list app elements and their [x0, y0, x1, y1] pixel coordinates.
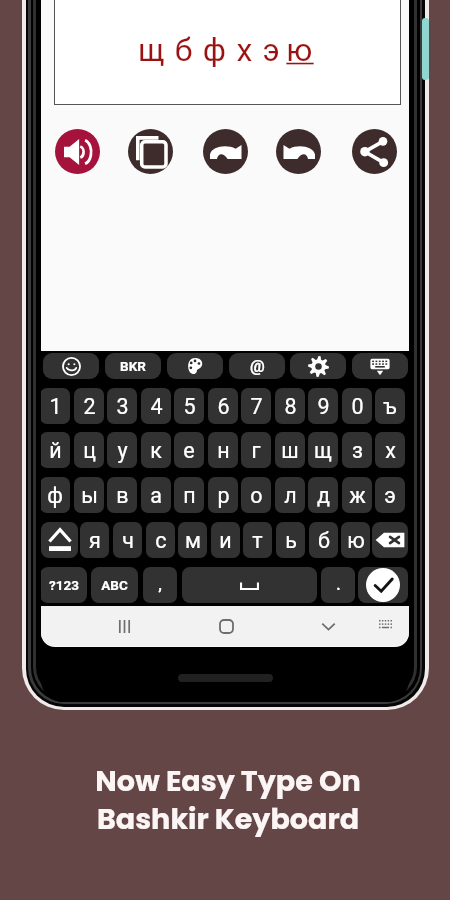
staticText: к [150, 438, 162, 463]
button[interactable]: Back [312, 610, 344, 642]
button[interactable]: ?123 [41, 567, 87, 603]
button[interactable]: Settings [290, 353, 346, 379]
button[interactable]: ж [342, 477, 372, 513]
button[interactable]: я [80, 522, 109, 558]
staticText: 9 [317, 394, 330, 419]
button[interactable]: 6 [208, 388, 238, 424]
button[interactable]: Redo [203, 129, 248, 174]
button[interactable]: б [309, 522, 338, 558]
staticText: ж [349, 483, 366, 508]
staticText: @ [250, 357, 265, 376]
button[interactable]: Shift [41, 522, 78, 558]
button[interactable]: и [211, 522, 240, 558]
staticText: е [183, 438, 195, 463]
button[interactable]: ABC [91, 567, 138, 603]
button[interactable]: а [141, 477, 171, 513]
staticText: м [185, 528, 201, 553]
button[interactable]: Copy [128, 129, 173, 174]
button[interactable]: 2 [74, 388, 104, 424]
staticText: о [250, 483, 263, 508]
staticText: у [117, 438, 128, 463]
button[interactable]: т [243, 522, 272, 558]
button[interactable]: Recents [108, 610, 140, 642]
staticText: г [251, 438, 261, 463]
staticText: ф [47, 483, 63, 508]
button[interactable]: у [107, 432, 137, 468]
button[interactable]: 1 [41, 388, 70, 424]
staticText: з [352, 438, 363, 463]
staticText: и [219, 528, 232, 553]
staticText: 2 [83, 394, 96, 419]
button[interactable]: ф [41, 477, 70, 513]
button[interactable]: ь [276, 522, 305, 558]
staticText: я [89, 528, 101, 553]
staticText: р [217, 483, 230, 508]
button[interactable]: с [146, 522, 175, 558]
button[interactable]: . [321, 567, 355, 603]
button[interactable]: л [275, 477, 305, 513]
staticText: Bashkir Keyboard [3, 799, 450, 839]
button[interactable]: BKR [105, 353, 161, 379]
staticText: 5 [183, 394, 196, 419]
button[interactable]: Switch keyboard [369, 610, 401, 642]
button[interactable]: н [208, 432, 238, 468]
button[interactable]: ц [74, 432, 104, 468]
staticText: ъ [383, 394, 397, 419]
staticText: . [336, 576, 341, 594]
button[interactable]: Backspace [372, 522, 408, 558]
button[interactable]: п [174, 477, 204, 513]
button[interactable]: з [342, 432, 372, 468]
button[interactable]: Hide keyboard [352, 353, 408, 379]
staticText: ь [285, 528, 297, 553]
staticText: ю [347, 528, 365, 553]
button[interactable]: Speak [55, 129, 100, 174]
button[interactable]: ъ [375, 388, 405, 424]
button[interactable]: Share [352, 129, 397, 174]
button[interactable]: Undo [276, 129, 321, 174]
button[interactable]: ы [74, 477, 104, 513]
button[interactable]: д [308, 477, 338, 513]
staticText: 8 [284, 394, 297, 419]
button[interactable]: м [178, 522, 207, 558]
button[interactable]: @ [229, 353, 285, 379]
staticText: 1 [49, 394, 62, 419]
staticText: щ [314, 438, 332, 463]
button[interactable]: 4 [141, 388, 171, 424]
button[interactable]: о [241, 477, 271, 513]
button[interactable]: й [41, 432, 70, 468]
button[interactable]: Emoji [43, 353, 99, 379]
staticText: в [116, 483, 129, 508]
button[interactable]: 3 [107, 388, 137, 424]
button[interactable]: 8 [275, 388, 305, 424]
button[interactable]: Enter [358, 567, 408, 603]
button[interactable]: ю [341, 522, 370, 558]
staticText: BKR [120, 358, 146, 374]
staticText: 3 [116, 394, 129, 419]
button[interactable]: к [141, 432, 171, 468]
button[interactable]: Theme [167, 353, 223, 379]
staticText: ч [122, 528, 134, 553]
button[interactable]: 7 [241, 388, 271, 424]
button[interactable]: ч [113, 522, 142, 558]
staticText: ABC [101, 577, 128, 593]
button[interactable]: Space [182, 567, 317, 603]
button[interactable]: е [174, 432, 204, 468]
staticText: д [317, 483, 330, 508]
button[interactable]: щ [308, 432, 338, 468]
button[interactable]: , [143, 567, 177, 603]
button[interactable]: в [107, 477, 137, 513]
button[interactable]: ш [275, 432, 305, 468]
staticText: п [183, 483, 196, 508]
button[interactable]: Home [210, 610, 242, 642]
button[interactable]: э [375, 477, 405, 513]
button[interactable]: 5 [174, 388, 204, 424]
staticText: ш [281, 438, 299, 463]
button[interactable]: г [241, 432, 271, 468]
button[interactable]: 0 [342, 388, 372, 424]
staticText: т [252, 528, 263, 553]
staticText: б [318, 528, 330, 553]
button[interactable]: х [375, 432, 405, 468]
button[interactable]: р [208, 477, 238, 513]
staticText: щ б ф х э [133, 31, 286, 69]
button[interactable]: 9 [308, 388, 338, 424]
